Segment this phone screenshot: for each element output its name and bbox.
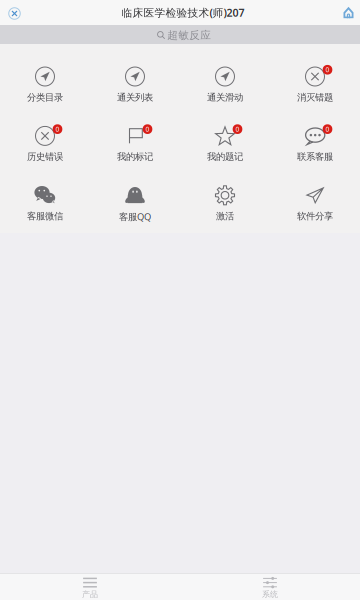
staticText: 客服QQ <box>119 210 151 223</box>
button[interactable]: 0 <box>180 124 270 162</box>
staticText: 通关滑动 <box>207 92 243 103</box>
staticText: 消灭错题 <box>297 92 333 103</box>
staticText: 超敏反应 <box>167 29 211 42</box>
button[interactable]: 0 <box>270 124 360 162</box>
button[interactable]: Close <box>0 0 29 26</box>
staticText: 0 <box>325 125 329 134</box>
button[interactable]: 激活 <box>180 183 270 221</box>
staticText: 产品 <box>82 589 98 599</box>
staticText: 系统 <box>262 589 278 599</box>
button[interactable]: 产品 <box>0 570 180 600</box>
button[interactable]: 0 <box>90 124 180 162</box>
button[interactable]: 客服微信 <box>0 183 90 221</box>
button[interactable]: 通关列表 <box>90 64 180 103</box>
staticText: 分类目录 <box>27 92 63 103</box>
button[interactable]: 0 <box>270 64 360 103</box>
staticText: 激活 <box>216 210 234 222</box>
staticText: 临床医学检验技术(师)207 <box>121 5 244 20</box>
button[interactable]: 0 <box>0 124 90 162</box>
staticText: 客服微信 <box>27 210 63 222</box>
button[interactable]: 超敏反应 <box>0 25 360 44</box>
button[interactable]: Home <box>337 0 360 25</box>
staticText: 历史错误 <box>27 151 63 162</box>
staticText: 我的题记 <box>207 151 243 162</box>
button[interactable]: 软件分享 <box>270 183 360 221</box>
button[interactable]: 系统 <box>180 570 360 600</box>
staticText: 联系客服 <box>297 151 333 162</box>
staticText: 通关列表 <box>117 92 153 103</box>
button[interactable]: 分类目录 <box>0 64 90 103</box>
button[interactable]: 客服QQ <box>90 183 180 221</box>
staticText: 我的标记 <box>117 151 153 162</box>
staticText: 软件分享 <box>297 210 333 222</box>
staticText: 0 <box>55 125 59 134</box>
staticText: 0 <box>325 65 329 74</box>
staticText: 0 <box>145 125 149 134</box>
button[interactable]: 通关滑动 <box>180 64 270 103</box>
staticText: 0 <box>235 125 239 134</box>
